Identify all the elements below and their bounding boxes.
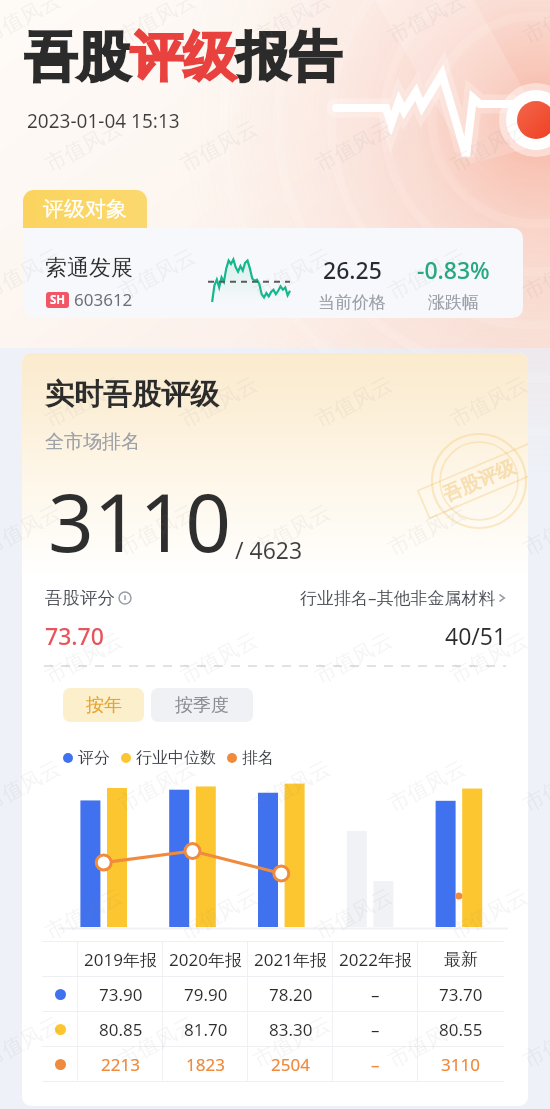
staticText: 市值风云 [249,499,335,561]
staticText: 吾股评级 [439,455,519,507]
staticText: 涨跌幅 [428,292,479,313]
staticText: 市值风云 [0,1011,65,1073]
staticText: 报告 [236,24,342,91]
staticText: 索通发展 [45,254,133,282]
button[interactable]: 行业排名–其他非金属材料 [300,586,507,609]
button[interactable]: 按季度 [151,688,253,722]
staticText: 按年 [86,694,122,717]
staticText: 市值风云 [176,627,262,689]
staticText: 最新 [444,949,478,970]
staticText: 市值风云 [114,1011,200,1073]
staticText: 73.70 [439,983,483,1006]
staticText: 市值风云 [41,115,127,177]
staticText: 市值风云 [519,243,550,305]
staticText: 市值风云 [114,0,200,49]
staticText: 83.30 [269,1018,313,1041]
other: 说明 [118,591,132,605]
staticText: -0.83% [417,254,490,285]
staticText: 市值风云 [114,499,200,561]
staticText: 评级对象 [43,196,127,222]
staticText: 79.90 [184,983,228,1006]
staticText: 73.90 [99,983,143,1006]
staticText: / 4623 [235,534,303,565]
staticText: 市值风云 [311,627,397,689]
staticText: 市值风云 [384,243,470,305]
staticText: 3110 [441,1053,480,1076]
staticText: 吾股 [24,24,130,91]
staticText: 603612 [74,288,133,311]
staticText: 市值风云 [311,115,397,177]
staticText: 市值风云 [0,0,65,49]
staticText: 市值风云 [41,371,127,433]
staticText: 市值风云 [311,371,397,433]
staticText: 2213 [101,1053,140,1076]
staticText: 1823 [186,1053,225,1076]
staticText: 2022年报 [339,948,412,971]
staticText: 全市场排名 [45,430,140,454]
staticText: 市值风云 [446,371,532,433]
staticText: 市值风云 [249,1011,335,1073]
staticText: 市值风云 [446,627,532,689]
staticText: 市值风云 [384,755,470,817]
staticText: 81.70 [184,1018,228,1041]
staticText: 市值风云 [446,883,532,945]
staticText: 市值风云 [176,883,262,945]
staticText: 市值风云 [249,0,335,49]
staticText: 评级 [130,24,236,91]
staticText: 排名 [242,748,274,768]
staticText: 市值风云 [519,499,550,561]
staticText: 当前价格 [318,292,386,313]
staticText: 市值风云 [519,0,550,49]
staticText: 实时吾股评级 [45,376,219,413]
staticText: 市值风云 [114,755,200,817]
staticText: – [371,1053,380,1076]
staticText: 73.70 [45,620,104,651]
staticText: 市值风云 [114,243,200,305]
staticText: 市值风云 [446,115,532,177]
staticText: 按季度 [175,694,229,717]
staticText: 2504 [271,1053,310,1076]
staticText: 3110 [48,466,232,575]
staticText: 市值风云 [311,883,397,945]
staticText: 80.85 [99,1018,143,1041]
staticText: 78.20 [269,983,313,1006]
button[interactable]: 按年 [63,688,144,722]
staticText: – [371,1018,380,1041]
staticText: SH [50,292,66,308]
staticText: 26.25 [323,254,382,285]
staticText: 80.55 [439,1018,483,1041]
staticText: 评分 [78,748,110,768]
staticText: 市值风云 [519,1011,550,1073]
staticText: 行业中位数 [136,748,216,768]
staticText: 市值风云 [0,499,65,561]
staticText: 市值风云 [384,1011,470,1073]
staticText: 市值风云 [384,0,470,49]
staticText: 市值风云 [41,883,127,945]
staticText: 2023-01-04 15:13 [27,108,180,134]
staticText: 2019年报 [84,948,157,971]
button[interactable]: 索通发展 [24,228,523,318]
staticText: 2020年报 [169,948,242,971]
staticText: 市值风云 [176,371,262,433]
staticText: 市值风云 [249,243,335,305]
staticText: – [371,983,380,1006]
staticText: 市值风云 [519,755,550,817]
staticText: 40/51 [445,620,507,651]
staticText: 市值风云 [41,627,127,689]
staticText: 市值风云 [176,115,262,177]
staticText: 市值风云 [384,499,470,561]
staticText: 市值风云 [249,755,335,817]
staticText: 行业排名–其他非金属材料 [300,586,496,609]
staticText: 吾股评分 [45,587,115,609]
staticText: 2021年报 [254,948,327,971]
staticText: 市值风云 [0,755,65,817]
button[interactable]: 评级对象 [23,190,147,228]
staticText: 市值风云 [0,243,65,305]
